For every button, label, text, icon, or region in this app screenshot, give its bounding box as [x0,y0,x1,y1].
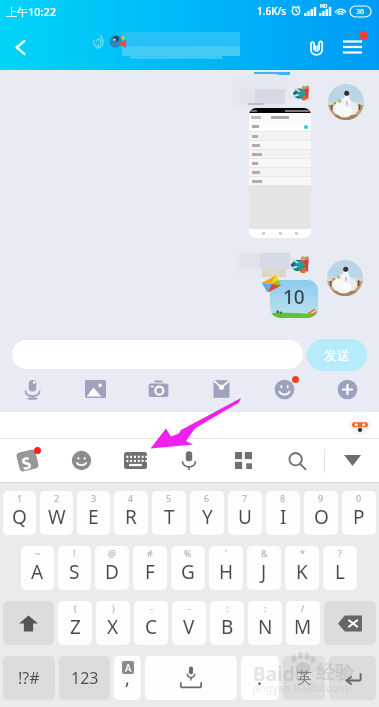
staticText: L [335,559,345,585]
staticText: jingyan.baidu.com [253,680,349,695]
staticText: D [105,559,119,585]
button[interactable]: Shift [3,601,54,645]
staticText: A [31,559,44,585]
staticText: K [296,559,308,585]
staticText: & [261,547,268,559]
staticText: - [188,602,191,614]
button[interactable]: J [247,546,281,590]
button[interactable]: Comma [114,656,141,700]
staticText: U [238,504,252,530]
button[interactable]: F [133,546,167,590]
staticText: 1.6K/s [257,4,287,18]
staticText: 9 [318,492,324,504]
button[interactable]: R [114,491,148,535]
button[interactable]: Z [58,601,92,645]
button[interactable]: N [248,601,282,645]
button[interactable]: Hide keyboard [325,439,379,482]
button[interactable]: L [323,546,357,590]
staticText: J [261,559,267,585]
button[interactable]: Search [270,439,324,482]
button[interactable]: P [342,491,376,535]
button[interactable]: Space [145,656,237,700]
staticText: 4 [128,492,134,504]
button[interactable]: Sogou input [0,439,54,482]
button[interactable]: Back [2,24,38,70]
staticText: * [300,547,305,559]
button[interactable]: T [152,491,186,535]
button[interactable]: Camera [127,374,190,404]
button[interactable]: I [266,491,300,535]
staticText: HD [320,3,328,10]
button[interactable]: D [95,546,129,590]
staticText: G [181,559,195,585]
staticText: E [88,504,99,530]
staticText: P [353,504,365,530]
button[interactable]: Y [190,491,224,535]
staticText: H [219,559,234,585]
other: Backspace [337,614,363,633]
button[interactable]: Voice message [0,374,64,404]
staticText: Z [70,614,81,640]
staticText: ? [338,547,342,559]
staticText: # [147,547,153,559]
button[interactable]: Language [283,656,325,700]
button[interactable]: Voice input [162,439,216,482]
button[interactable]: Gesture [298,29,334,65]
button[interactable]: O [304,491,338,535]
button[interactable]: Menu [334,29,370,65]
button[interactable]: 123 [59,656,110,700]
staticText: 0 [356,492,362,504]
button[interactable]: Gallery [64,374,127,404]
staticText: S [19,451,34,475]
button[interactable]: Red packet [190,374,253,404]
button[interactable]: Emoji [253,374,316,404]
button[interactable]: 发送 [307,339,367,371]
button[interactable]: U [228,491,262,535]
button[interactable]: Keyboard layout [108,439,162,482]
button[interactable]: Emoji panel [54,439,108,482]
button[interactable]: H [209,546,243,590]
button[interactable]: C [134,601,168,645]
staticText: B [221,614,234,640]
staticText: ) [112,602,115,614]
button[interactable]: M [286,601,320,645]
staticText: ~ [35,547,41,559]
button[interactable]: G [171,546,205,590]
staticText: 10 [283,284,305,310]
button[interactable]: Enter [329,656,376,700]
other: Shift [18,614,39,633]
staticText: ! [73,547,76,559]
button[interactable]: !?# [3,656,55,700]
staticText: 经验 [316,661,354,685]
button[interactable]: B [210,601,244,645]
button[interactable]: E [77,491,110,535]
button[interactable]: Q [3,491,36,535]
other: Enter [343,670,363,686]
staticText: 6 [204,492,210,504]
button[interactable]: More [316,374,379,404]
other: Space [145,656,237,700]
staticText: Baidu [253,661,308,687]
staticText: F [145,559,155,585]
staticText: 3 [91,492,97,504]
staticText: / [301,602,305,614]
button[interactable]: W [40,491,73,535]
button[interactable]: S [58,546,91,590]
button[interactable]: App panel [216,439,270,482]
button[interactable]: Message input [12,340,303,369]
button[interactable]: K [285,546,319,590]
staticText: % [184,547,192,559]
button[interactable]: V [172,601,206,645]
button[interactable]: X [96,601,130,645]
staticText: R [125,504,137,530]
staticText: ' [225,547,228,559]
staticText: X [107,614,119,640]
staticText: S [69,559,80,585]
button[interactable]: Period [241,656,279,700]
staticText: - [150,602,153,614]
button[interactable]: A [21,546,54,590]
button[interactable]: Backspace [324,601,376,645]
staticText: T [164,504,175,530]
staticText: 123 [71,667,99,689]
staticText: , [125,666,130,691]
